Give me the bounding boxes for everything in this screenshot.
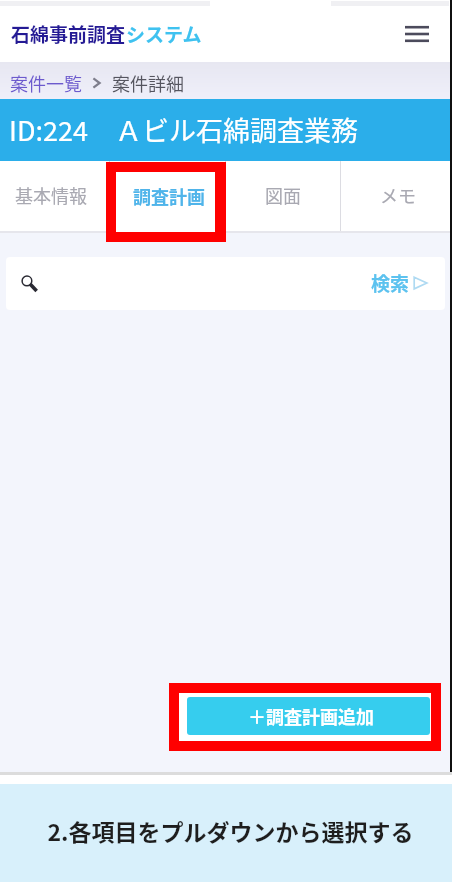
staticText: 案件詳細 bbox=[112, 70, 184, 96]
button[interactable]: メモ bbox=[340, 161, 452, 231]
button[interactable]: 調査計画 bbox=[111, 161, 227, 231]
button[interactable]: 案件一覧 bbox=[10, 70, 82, 96]
button[interactable]: 検索 bbox=[371, 269, 428, 297]
staticText: 石綿事前調査 bbox=[11, 20, 126, 48]
staticText: ＋調査計画追加 bbox=[248, 703, 374, 729]
staticText: 調査計画 bbox=[133, 183, 205, 209]
button[interactable]: 基本情報 bbox=[0, 161, 109, 231]
staticText: 検索 bbox=[371, 269, 410, 297]
staticText: ID:224 Ａビル石綿調査業務 bbox=[9, 110, 358, 149]
button[interactable]: Menu bbox=[397, 14, 437, 54]
staticText: メモ bbox=[380, 182, 416, 208]
button[interactable]: 図面 bbox=[225, 161, 341, 231]
staticText: 図面 bbox=[265, 182, 301, 208]
button[interactable]: ＋調査計画追加 bbox=[187, 697, 430, 735]
staticText: システム bbox=[126, 20, 202, 48]
staticText: 2.各項目をプルダウンから選択する bbox=[47, 814, 414, 847]
staticText: 基本情報 bbox=[15, 182, 87, 208]
